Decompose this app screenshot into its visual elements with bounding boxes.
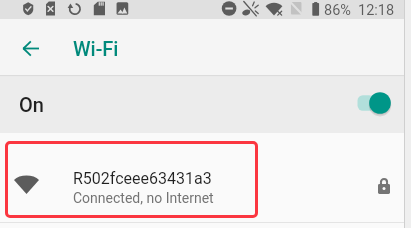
staticText: 86%	[324, 2, 351, 19]
button[interactable]: R502fceee63431a3	[0, 133, 411, 222]
staticText: Wi-Fi	[73, 37, 119, 60]
staticText: Connected, no Internet	[73, 190, 214, 206]
staticText: 12:18	[358, 2, 395, 19]
button[interactable]: On	[0, 77, 411, 133]
button[interactable]: Navigate up	[12, 30, 48, 66]
staticText: R502fceee63431a3	[73, 169, 212, 188]
staticText: On	[19, 93, 44, 116]
